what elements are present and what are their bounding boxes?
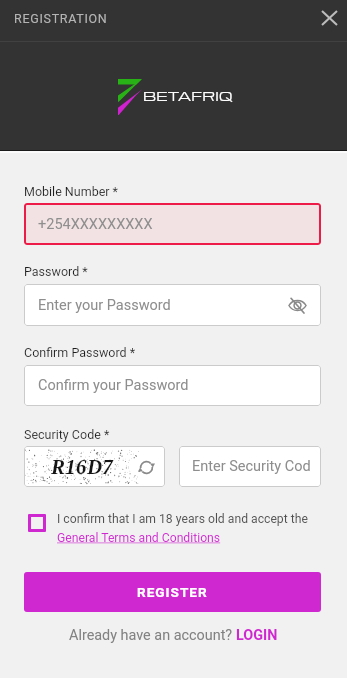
button[interactable]: Enter your Password [24, 284, 321, 326]
button[interactable]: +254XXXXXXXXX [24, 203, 321, 245]
staticText: Confirm your Password [38, 377, 189, 394]
staticText: Enter Security Code [192, 458, 310, 475]
button[interactable]: LOGIN [236, 627, 278, 644]
staticText: Enter your Password [38, 297, 171, 314]
staticText: BETAFRIQ [143, 86, 233, 104]
staticText: Already have an account? [69, 627, 236, 644]
staticText: REGISTRATION [14, 11, 108, 26]
staticText: REGISTER [137, 584, 208, 600]
button[interactable] [24, 509, 324, 547]
staticText: Mobile Number * [24, 184, 119, 199]
staticText: +254XXXXXXXXX [38, 216, 153, 233]
staticText: R16D7 [51, 455, 114, 478]
button[interactable]: Close [311, 0, 347, 36]
staticText: Security Code * [24, 427, 110, 442]
staticText: Password * [24, 264, 88, 279]
button[interactable]: Confirm your Password [24, 365, 321, 406]
button[interactable]: General Terms and Conditions [57, 531, 221, 545]
button[interactable]: REGISTER [24, 572, 321, 612]
button[interactable]: Enter Security Code [179, 446, 321, 487]
staticText: I confirm that I am 18 years old and acc… [57, 512, 308, 526]
button[interactable]: Show password [284, 292, 310, 318]
button[interactable]: Refresh security code [136, 457, 156, 477]
staticText: Confirm Password * [24, 345, 136, 360]
